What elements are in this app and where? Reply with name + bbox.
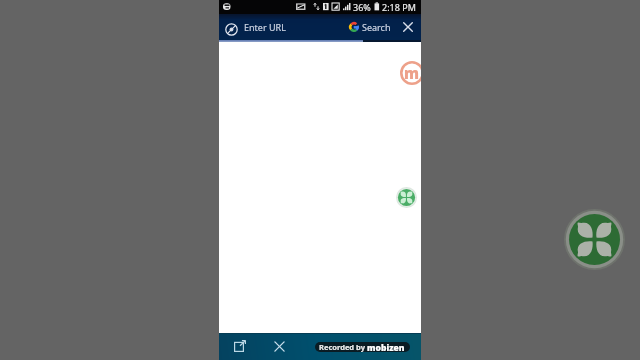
staticText: m <box>404 63 420 83</box>
staticText: Recorded by <box>319 342 365 352</box>
staticText: mobizen <box>367 342 405 352</box>
staticText: 2:18 PM <box>382 1 416 13</box>
button[interactable]: Close <box>398 17 418 37</box>
button[interactable]: Search <box>349 14 391 40</box>
button[interactable]: Browser menu <box>222 20 240 38</box>
button[interactable]: Open in new tab <box>229 335 251 357</box>
button[interactable]: Screen recorder overlay <box>564 209 625 270</box>
button[interactable]: Enter URL <box>244 14 286 40</box>
staticText: 36% <box>353 1 371 13</box>
staticText: Enter URL <box>244 21 286 33</box>
button[interactable]: Close tab <box>268 335 290 357</box>
staticText: Search <box>362 21 391 33</box>
button[interactable]: Screen recorder <box>396 187 417 208</box>
